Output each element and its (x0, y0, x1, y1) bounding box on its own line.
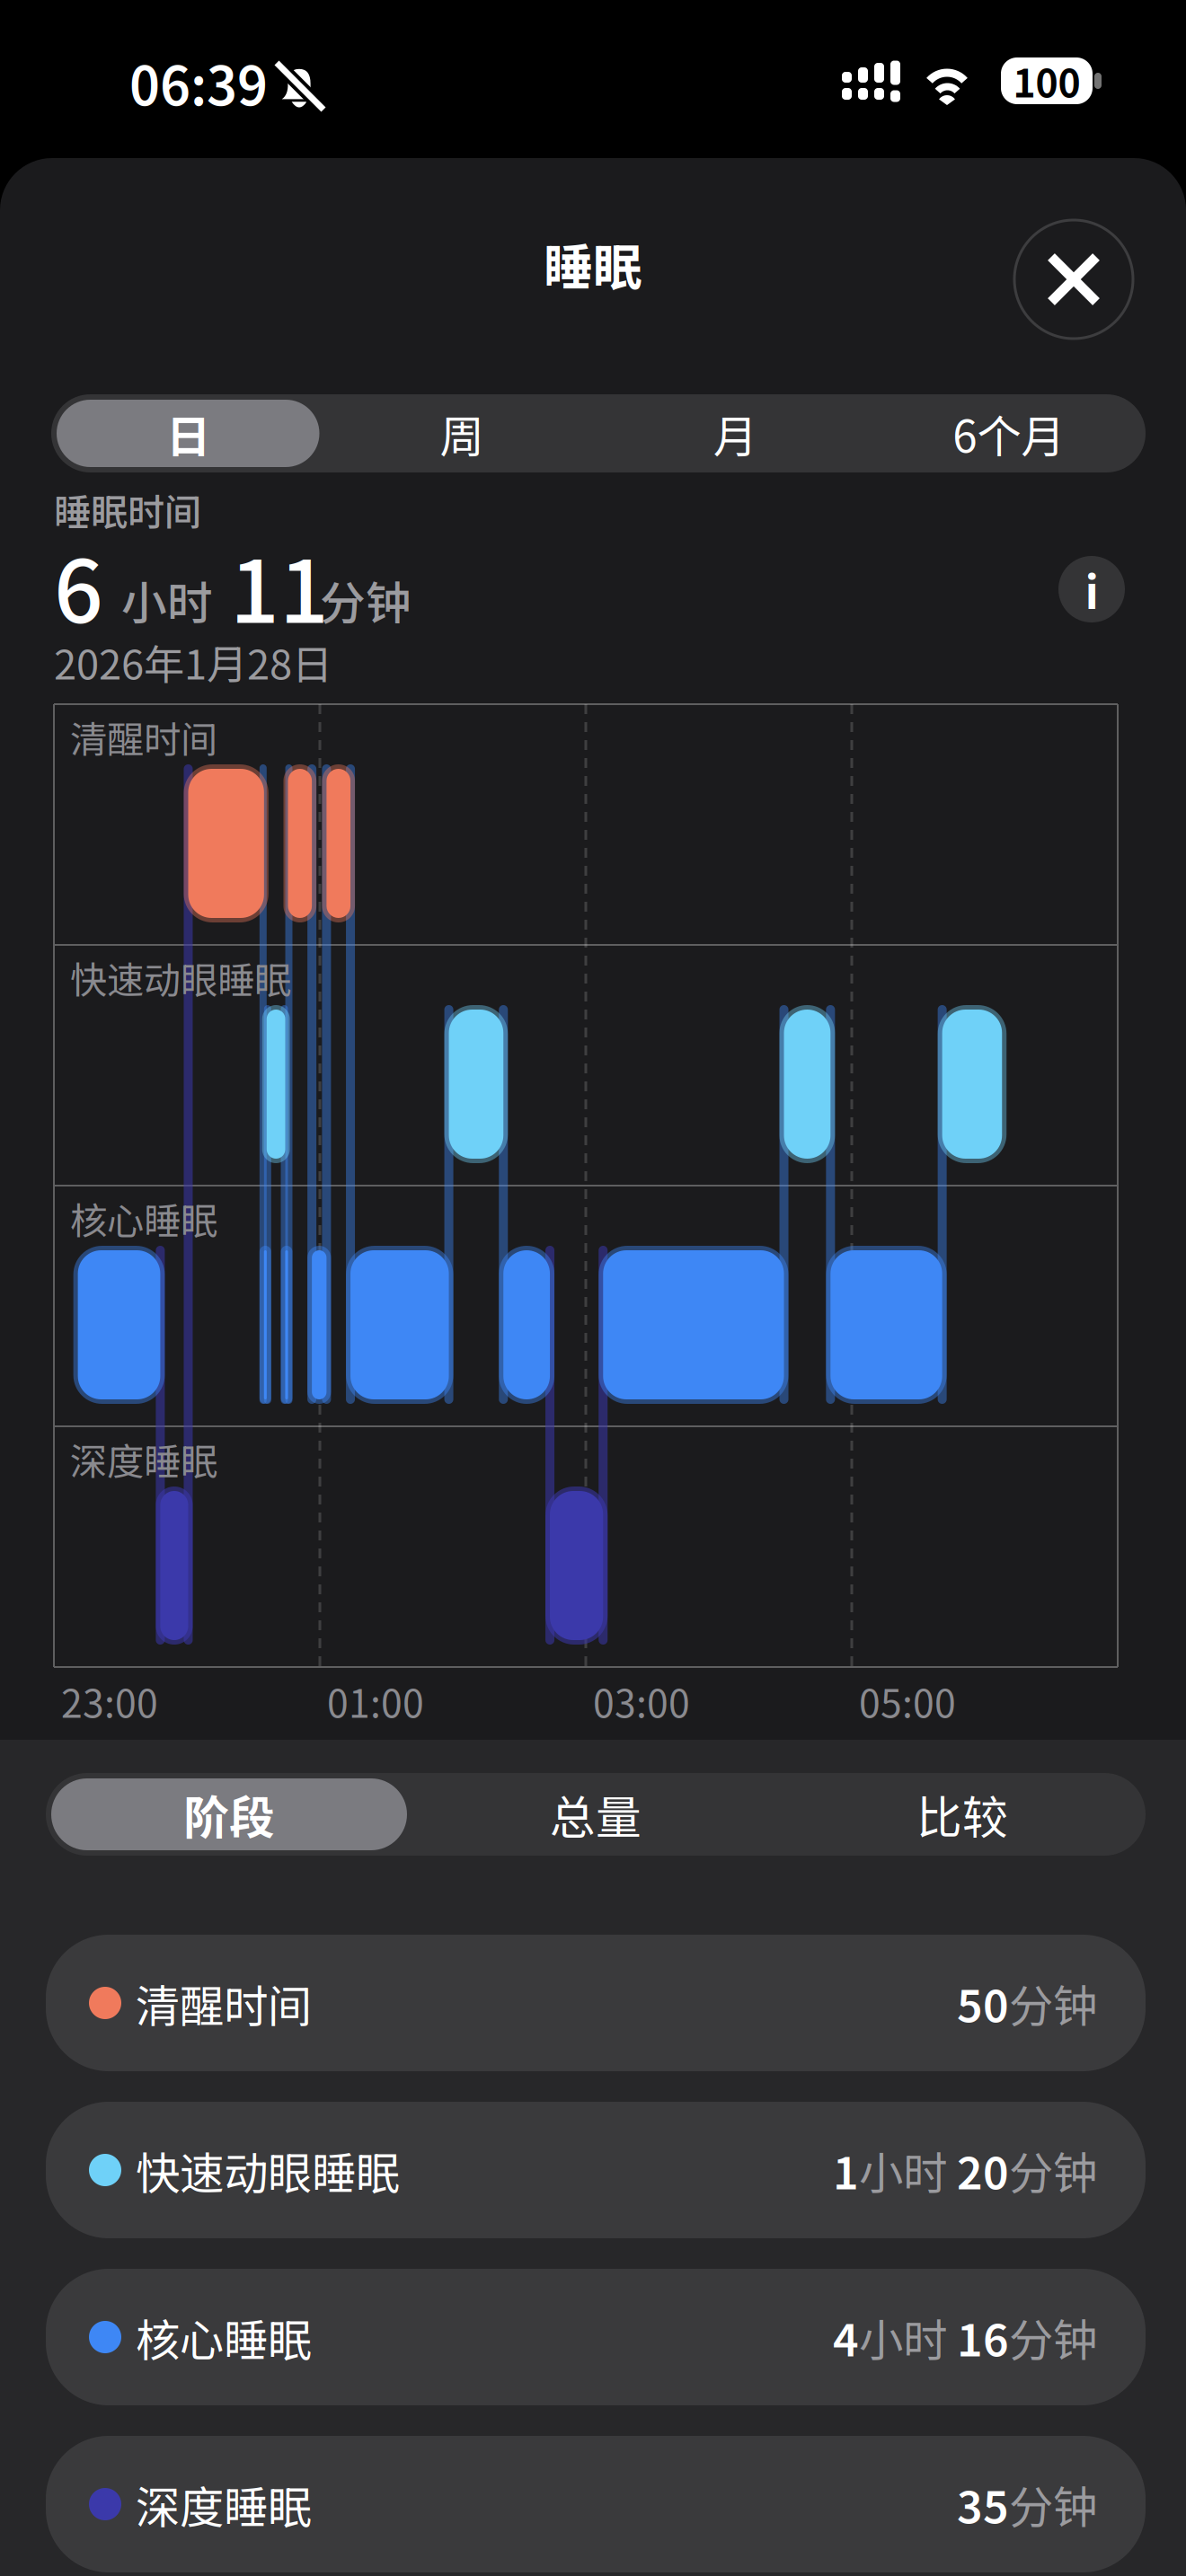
button[interactable]: 信息 (1058, 556, 1125, 622)
staticText: 23:00 (61, 1673, 158, 1729)
button[interactable]: 清醒时间 (0, 1740, 1100, 1876)
staticText: 日 (166, 401, 210, 465)
staticText: 2026年1月28日 (54, 632, 332, 691)
staticText: 16 (947, 2305, 1009, 2369)
staticText: 小时 (859, 2305, 947, 2369)
staticText: 1 (833, 2138, 859, 2202)
staticText: 睡眠 (544, 228, 642, 299)
staticText: 05:00 (859, 1673, 956, 1729)
staticText: 小时 (859, 2138, 947, 2202)
staticText: 核心睡眠 (136, 2305, 312, 2369)
staticText: 01:00 (327, 1673, 424, 1729)
staticText: 睡眠时间 (54, 483, 201, 536)
staticText: 6 (54, 523, 103, 648)
button[interactable]: 核心睡眠 (0, 1740, 1100, 1876)
staticText: 清醒时间 (70, 710, 217, 764)
staticText: 03:00 (593, 1673, 690, 1729)
staticText: 06:39 (129, 44, 268, 121)
staticText: 6个月 (953, 401, 1065, 465)
staticText: 分钟 (1009, 1971, 1097, 2035)
staticText: 核心睡眠 (70, 1191, 217, 1245)
button[interactable]: 6个月 (872, 394, 1146, 472)
button[interactable]: 周 (325, 394, 598, 472)
staticText: 分钟 (1009, 2138, 1097, 2202)
button[interactable]: 比较 (779, 1773, 1146, 1856)
staticText: 4 (833, 2305, 859, 2369)
staticText: 分钟 (1009, 2472, 1097, 2536)
staticText: i (1085, 556, 1098, 622)
button[interactable]: 深度睡眠 (0, 1740, 1100, 1876)
staticText: 深度睡眠 (70, 1432, 217, 1486)
staticText: 50 (957, 1971, 1009, 2035)
staticText: 快速动眼睡眠 (136, 2138, 400, 2202)
staticText: 比较 (916, 1781, 1008, 1847)
staticText: 11 (230, 523, 329, 648)
staticText: 周 (440, 401, 484, 465)
staticText: 20 (947, 2138, 1009, 2202)
staticText: 分钟 (320, 567, 412, 633)
staticText: 快速动眼睡眠 (70, 951, 291, 1004)
staticText: 深度睡眠 (136, 2472, 312, 2536)
button[interactable]: 日 (51, 394, 325, 472)
staticText: 阶段 (183, 1781, 275, 1847)
button[interactable]: 总量 (412, 1773, 779, 1856)
button[interactable]: 阶段 (46, 1773, 412, 1856)
button[interactable]: 快速动眼睡眠 (0, 1740, 1100, 1876)
staticText: 35 (957, 2472, 1009, 2536)
staticText: 清醒时间 (136, 1971, 312, 2035)
staticText: 100 (1013, 53, 1080, 109)
staticText: 月 (713, 401, 757, 465)
button[interactable]: 月 (598, 394, 872, 472)
staticText: 分钟 (1009, 2305, 1097, 2369)
button[interactable]: 关闭 (1013, 219, 1134, 340)
staticText: 小时 (121, 567, 213, 633)
staticText: 总量 (550, 1781, 642, 1847)
